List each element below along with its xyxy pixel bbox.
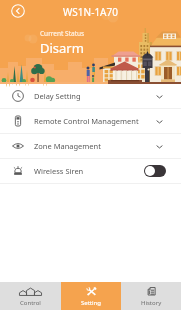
- staticText: History: [141, 299, 162, 307]
- staticText: Disarm: [40, 39, 84, 57]
- staticText: Current Status: [40, 29, 85, 38]
- button[interactable]: Delay Setting: [0, 84, 181, 108]
- staticText: Control: [20, 299, 41, 307]
- button[interactable]: Zone Management: [0, 134, 181, 158]
- button[interactable]: History: [121, 282, 181, 310]
- staticText: Setting: [81, 299, 101, 307]
- button[interactable]: Back: [7, 0, 28, 21]
- staticText: WS1N-1A70: [0, 5, 181, 19]
- button[interactable]: Setting: [61, 282, 121, 310]
- staticText: Delay Setting: [34, 91, 155, 101]
- button[interactable]: Remote Control Management: [0, 109, 181, 133]
- staticText: Remote Control Management: [34, 116, 155, 126]
- button[interactable]: Wireless Siren toggle: [144, 165, 166, 177]
- button[interactable]: Control: [0, 282, 61, 310]
- staticText: Zone Management: [34, 141, 155, 151]
- button[interactable]: Wireless Siren: [0, 159, 181, 183]
- staticText: Wireless Siren: [34, 166, 144, 176]
